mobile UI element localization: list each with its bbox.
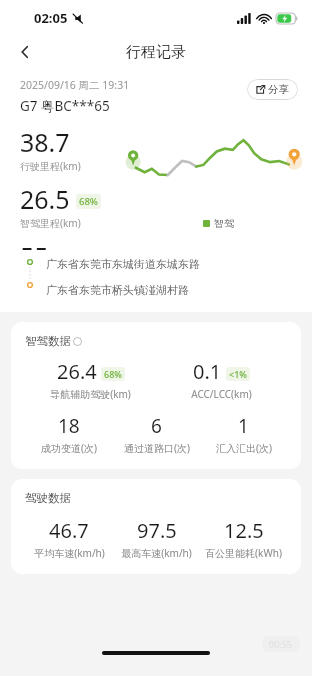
button[interactable]: Back [8,36,42,68]
staticText: 68% [104,368,122,380]
button[interactable]: 分享 [247,79,298,100]
staticText: 汇入汇出(次) [216,441,272,455]
staticText: G7 粤BC***65 [20,97,110,115]
staticText: 26.4 [57,358,97,385]
staticText: 46.7 [49,517,89,544]
staticText: 平均车速(km/h) [34,546,105,560]
staticText: 通过道路口(次) [124,441,190,455]
staticText: 97.5 [137,517,177,544]
staticText: 分享 [268,83,289,96]
staticText: 0.1 [193,358,222,385]
staticText: 行驶里程(km) [20,159,81,173]
staticText: 18 [58,413,80,439]
staticText: 百公里能耗(kWh) [205,546,282,560]
staticText: 1 [238,413,249,439]
staticText: 00:55 [269,638,293,650]
staticText: 38.7 [20,125,70,159]
staticText: 智驾数据 [25,334,71,348]
staticText: 26.5 [20,182,70,216]
staticText: 2025/09/16 周二 19:31 [20,78,130,92]
staticText: 智驾里程(km) [20,216,81,230]
staticText: 广东省东莞市桥头镇湴湖村路 [46,283,189,297]
staticText: 智驾 [214,217,234,230]
staticText: 55 [20,239,49,250]
staticText: 驾驶数据 [25,491,71,505]
staticText: 02:05 [34,9,68,27]
staticText: 6 [151,413,162,439]
staticText: 行程记录 [126,43,186,62]
staticText: <1% [229,368,247,380]
staticText: 成功变道(次) [41,441,97,455]
staticText: 广东省东莞市东城街道东城东路 [46,257,200,271]
staticText: ACC/LCC(km) [191,387,252,401]
staticText: 导航辅助驾驶(km) [50,387,131,401]
staticText: 最高车速(km/h) [121,546,192,560]
staticText: 12.5 [224,517,264,544]
staticText: 68% [79,195,98,208]
